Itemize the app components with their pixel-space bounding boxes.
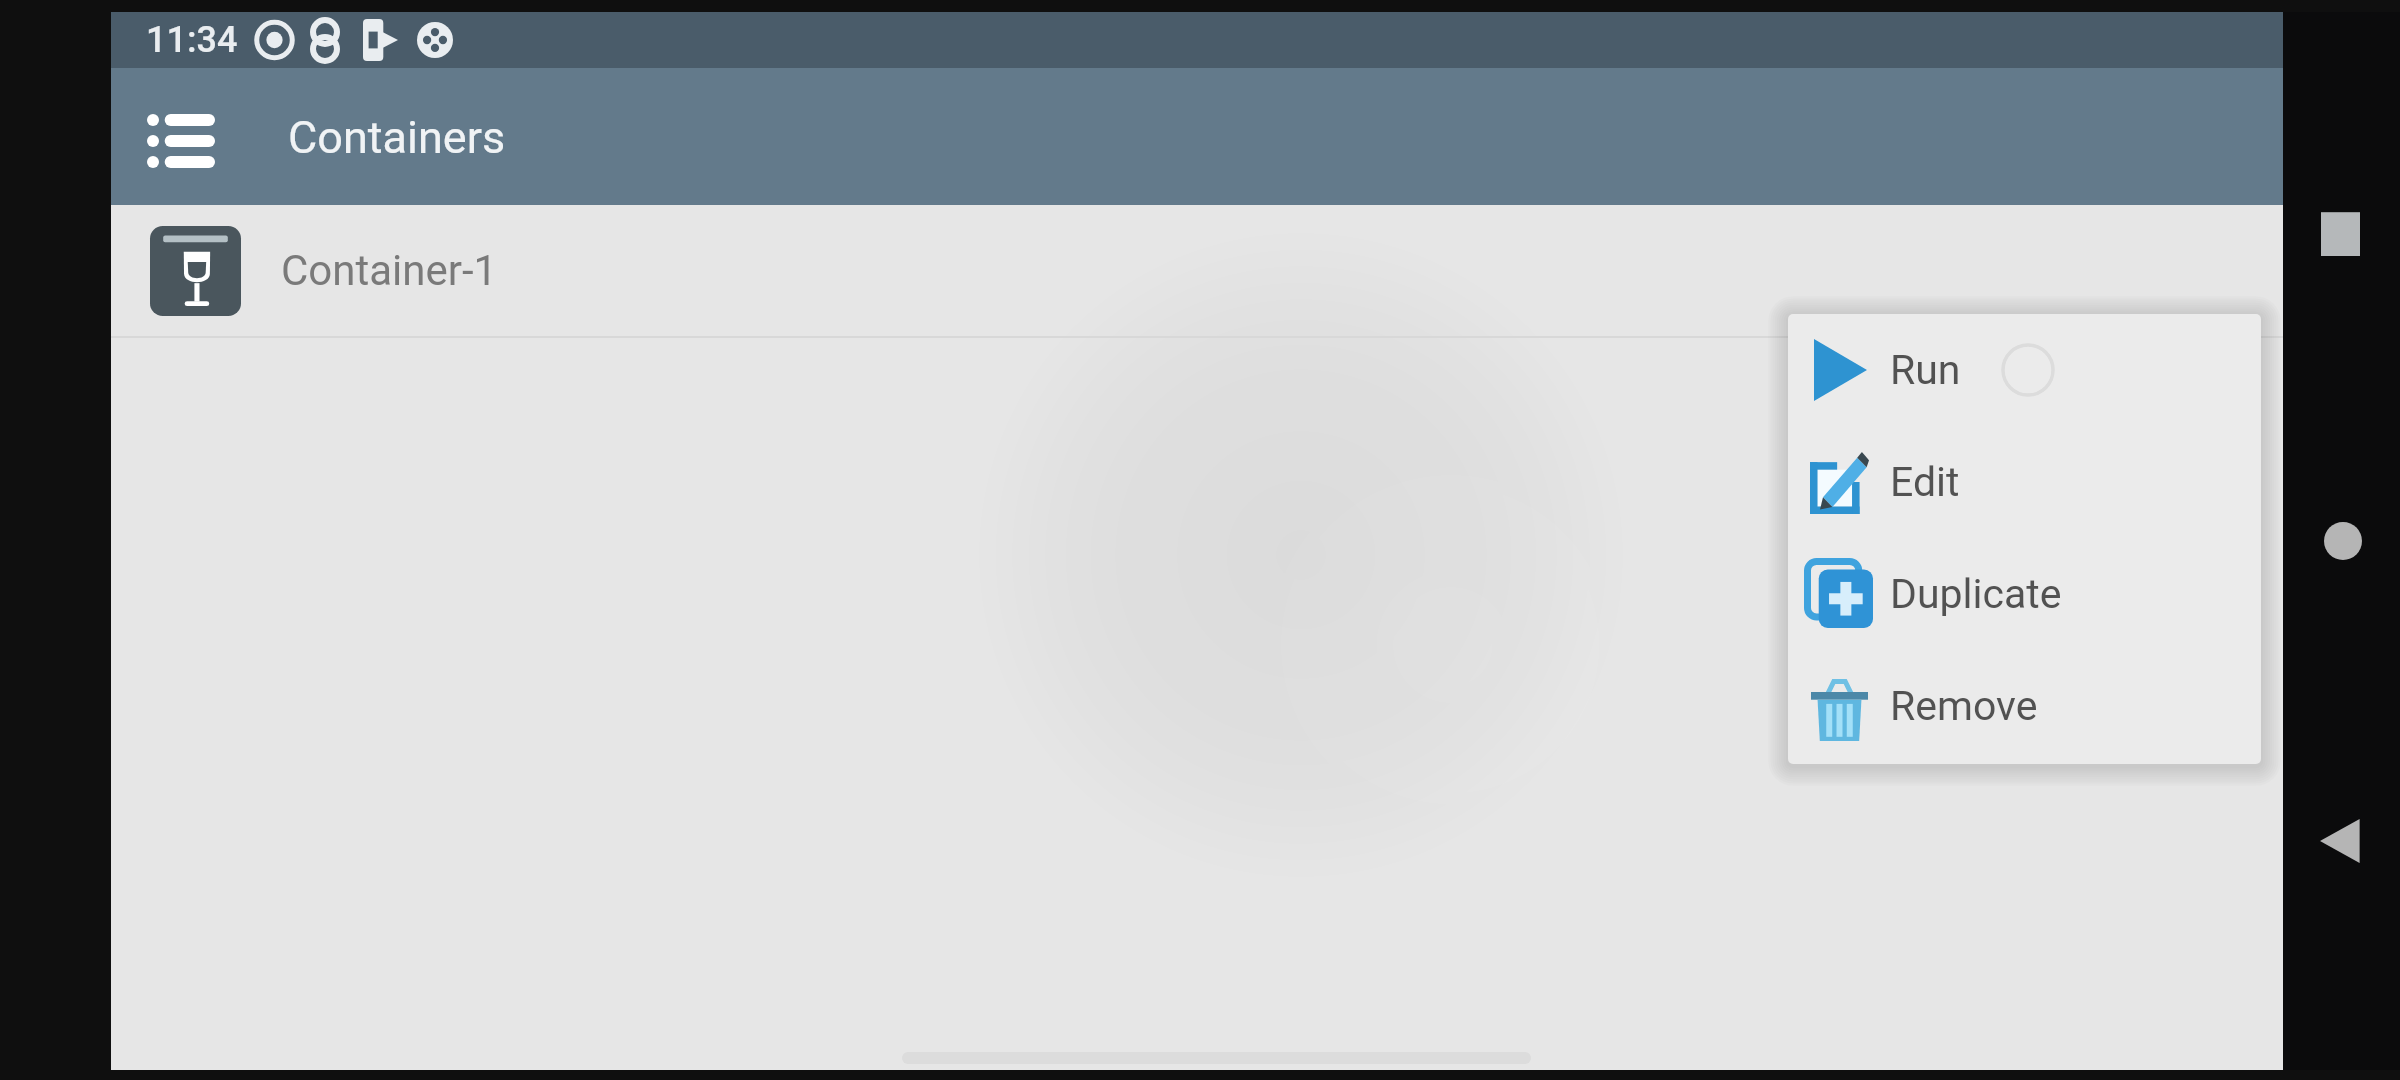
button[interactable]: Open navigation menu — [133, 93, 229, 189]
button[interactable]: Home — [2324, 522, 2362, 560]
button[interactable]: Duplicate — [1788, 538, 2261, 650]
staticText: Containers — [288, 111, 506, 164]
staticText: Edit — [1890, 458, 1960, 506]
button[interactable]: Run — [1788, 314, 2261, 426]
button[interactable]: Remove — [1788, 650, 2261, 762]
button[interactable]: Edit — [1788, 426, 2261, 538]
button[interactable]: Recent apps — [2303, 190, 2363, 250]
button[interactable]: Container-1 — [111, 205, 2283, 336]
button[interactable]: Back — [2320, 819, 2364, 863]
staticText: Container-1 — [281, 246, 498, 295]
staticText: Remove — [1890, 682, 2038, 730]
staticText: 11:34 — [146, 19, 238, 61]
staticText: Run — [1890, 346, 1961, 394]
staticText: Duplicate — [1890, 570, 2062, 618]
